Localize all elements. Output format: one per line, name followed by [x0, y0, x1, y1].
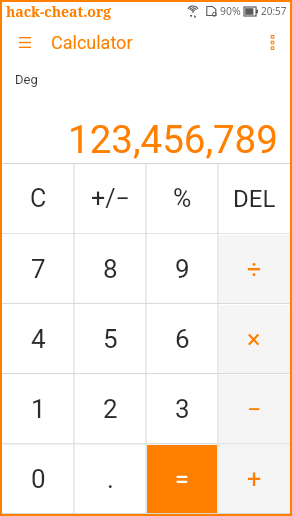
button[interactable]: 9 [146, 234, 218, 304]
staticText: Deg [15, 72, 38, 87]
staticText: 3 [175, 394, 190, 424]
button[interactable]: × [218, 304, 290, 374]
staticText: 8 [103, 254, 118, 284]
button[interactable]: Menu [2, 20, 51, 65]
staticText: 20:57 [261, 4, 287, 18]
staticText: . [107, 464, 114, 494]
staticText: 1 [31, 394, 46, 424]
staticText: 2 [103, 394, 118, 424]
staticText: 7 [31, 254, 46, 284]
staticText: ÷ [247, 255, 262, 284]
button[interactable]: 6 [146, 304, 218, 374]
button[interactable]: + [218, 444, 290, 514]
button[interactable]: DEL [218, 163, 290, 234]
button[interactable]: 0 [2, 444, 74, 514]
staticText: = [175, 465, 189, 494]
staticText: DEL [233, 185, 276, 213]
staticText: + [247, 465, 262, 494]
staticText: 123,456,789 [68, 117, 278, 162]
staticText: 0 [31, 464, 46, 494]
staticText: 5 [103, 324, 118, 354]
button[interactable]: − [218, 374, 290, 444]
staticText: +/− [91, 184, 130, 213]
button[interactable]: 4 [2, 304, 74, 374]
button[interactable]: C [2, 163, 74, 234]
button[interactable]: % [146, 163, 218, 234]
staticText: 6 [175, 324, 190, 354]
staticText: − [247, 395, 262, 424]
button[interactable]: 3 [146, 374, 218, 444]
button[interactable]: 8 [74, 234, 146, 304]
staticText: C [30, 184, 47, 213]
staticText: 90% [220, 4, 241, 18]
button[interactable]: . [74, 444, 146, 514]
button[interactable]: 7 [2, 234, 74, 304]
staticText: hack-cheat.org [6, 2, 112, 20]
button[interactable]: More options [255, 20, 290, 65]
button[interactable]: 5 [74, 304, 146, 374]
staticText: × [247, 325, 261, 354]
staticText: 9 [175, 254, 190, 284]
staticText: 4 [31, 324, 46, 354]
staticText: % [173, 184, 192, 213]
staticText: Calculator [51, 32, 133, 53]
button[interactable]: = [146, 444, 218, 514]
button[interactable]: ÷ [218, 234, 290, 304]
button[interactable]: 2 [74, 374, 146, 444]
button[interactable]: 1 [2, 374, 74, 444]
button[interactable]: +/− [74, 163, 146, 234]
